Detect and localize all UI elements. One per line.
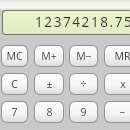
button[interactable]: 7: [1, 101, 28, 123]
button[interactable]: M+: [34, 45, 64, 67]
staticText: M+: [41, 49, 57, 63]
button[interactable]: ÷: [69, 73, 98, 95]
staticText: −: [119, 105, 126, 119]
staticText: 12374218.75: [35, 13, 130, 31]
button[interactable]: C: [1, 73, 28, 95]
button[interactable]: 8: [34, 101, 64, 123]
staticText: 8: [46, 105, 53, 119]
staticText: 9: [80, 105, 87, 119]
staticText: ±: [46, 77, 53, 91]
button[interactable]: ±: [34, 73, 64, 95]
staticText: x: [120, 77, 126, 91]
staticText: MR: [114, 49, 130, 63]
staticText: M−: [76, 49, 92, 63]
staticText: ÷: [80, 77, 87, 91]
staticText: MC: [6, 49, 23, 63]
staticText: 7: [11, 105, 18, 119]
button[interactable]: 9: [69, 101, 98, 123]
button[interactable]: x: [104, 73, 130, 95]
button[interactable]: MC: [1, 45, 28, 67]
button[interactable]: M−: [69, 45, 98, 67]
button[interactable]: −: [104, 101, 130, 123]
button[interactable]: MR: [104, 45, 130, 67]
staticText: C: [11, 77, 18, 91]
